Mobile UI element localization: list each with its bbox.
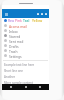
staticText: Inbox [9, 29, 18, 33]
staticText: More sample content [4, 81, 33, 84]
button[interactable]: Back [9, 85, 13, 89]
button[interactable]: Access mail [2, 23, 49, 28]
button[interactable]: Drafts [2, 43, 49, 48]
staticText: Settings [9, 54, 22, 58]
staticText: Pink [15, 18, 22, 23]
button[interactable]: Action [36, 12, 40, 16]
button[interactable]: Starred [2, 33, 49, 38]
button[interactable]: Action [44, 12, 48, 16]
button[interactable]: Menu [2, 9, 49, 18]
button[interactable]: Menu [4, 12, 8, 16]
staticText: Rea [8, 18, 14, 23]
button[interactable]: Sent mail [2, 38, 49, 43]
staticText: Drafts [9, 44, 19, 48]
button[interactable]: Trash [2, 48, 49, 53]
staticText: Another [4, 75, 16, 79]
staticText: Teal [23, 18, 30, 23]
staticText: Access mail [9, 24, 27, 28]
staticText: Starred [9, 34, 21, 38]
staticText: Example text line here [4, 63, 35, 67]
staticText: Short line one [4, 69, 23, 73]
staticText: Trash [9, 49, 18, 53]
staticText: Yellow [32, 18, 43, 23]
button[interactable]: Settings [2, 53, 49, 58]
button[interactable]: Inbox [2, 28, 49, 33]
staticText: Sent mail [9, 39, 24, 43]
button[interactable]: Action [40, 12, 44, 16]
button[interactable]: Recents [38, 85, 42, 89]
button[interactable]: Home [24, 85, 28, 89]
